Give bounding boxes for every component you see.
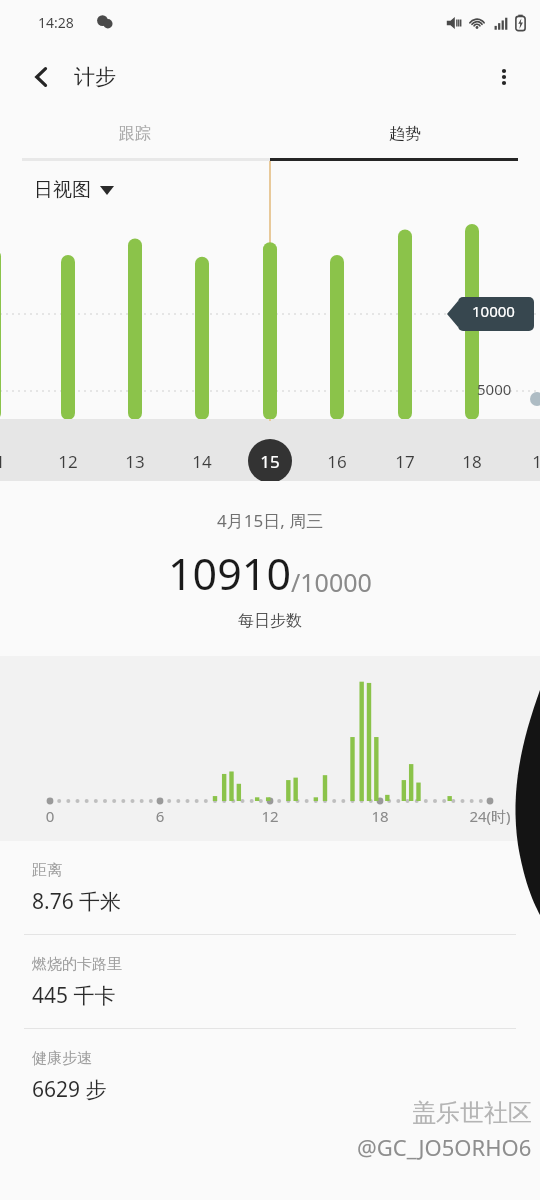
staticText: 0 (28, 806, 72, 826)
button[interactable]: 15 (248, 439, 292, 483)
staticText: 1 (532, 450, 540, 473)
staticText: 10910 (168, 544, 291, 603)
staticText: 14 (192, 450, 212, 473)
staticText: 10000 (472, 301, 515, 321)
staticText: /10000 (291, 565, 372, 599)
button[interactable]: 13 (113, 439, 157, 483)
staticText: 每日步数 (238, 611, 302, 631)
staticText: 跟踪 (119, 124, 151, 144)
staticText: 盖乐世社区 (412, 1098, 532, 1128)
button[interactable]: 健康步速 (0, 1028, 540, 1122)
staticText: 趋势 (389, 124, 421, 144)
button[interactable]: 趋势 (270, 110, 540, 158)
button[interactable]: 跟踪 (0, 110, 270, 158)
staticText: 16 (327, 450, 347, 473)
staticText: 燃烧的卡路里 (32, 955, 122, 974)
button[interactable]: 燃烧的卡路里 (0, 934, 540, 1028)
button[interactable]: More options (480, 53, 528, 101)
staticText: 12 (58, 450, 78, 473)
staticText: 13 (125, 450, 145, 473)
staticText: 计步 (74, 64, 116, 90)
staticText: 445 千卡 (32, 981, 116, 1010)
staticText: 18 (358, 806, 402, 826)
button[interactable]: 17 (383, 439, 427, 483)
staticText: 1 (0, 450, 5, 473)
staticText: 6 (138, 806, 182, 826)
staticText: 6629 步 (32, 1075, 107, 1104)
staticText: 日视图 (34, 178, 91, 202)
staticText: 18 (462, 450, 482, 473)
staticText: 5000 (477, 379, 512, 399)
button[interactable]: Back (18, 53, 66, 101)
staticText: 健康步速 (32, 1049, 92, 1068)
staticText: @GC_JO5ORHO6 (357, 1132, 532, 1162)
button[interactable]: 1 (0, 439, 22, 483)
button[interactable]: 1 (515, 439, 540, 483)
staticText: 距离 (32, 861, 62, 880)
button[interactable]: 日视图 (34, 178, 114, 202)
staticText: 17 (395, 450, 415, 473)
button[interactable]: 18 (450, 439, 494, 483)
staticText: 4月15日, 周三 (217, 509, 324, 532)
staticText: 24(时) (468, 806, 512, 826)
button[interactable]: 14 (180, 439, 224, 483)
button[interactable]: 12 (46, 439, 90, 483)
staticText: 14:28 (38, 13, 74, 32)
staticText: 15 (260, 450, 280, 473)
button[interactable]: 距离 (0, 841, 540, 934)
staticText: 8.76 千米 (32, 887, 122, 916)
button[interactable]: 16 (315, 439, 359, 483)
staticText: 12 (248, 806, 292, 826)
